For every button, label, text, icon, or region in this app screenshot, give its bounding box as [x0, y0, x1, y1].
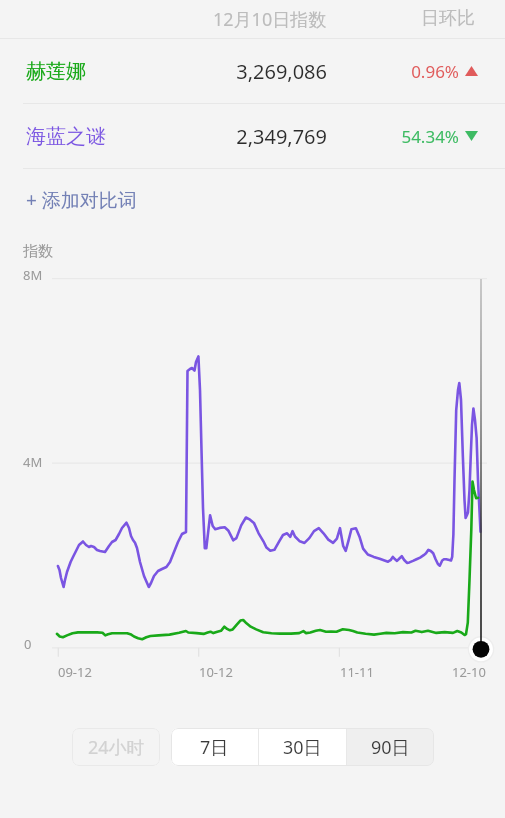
- staticText: 10-12: [199, 663, 233, 681]
- button[interactable]: 海蓝之谜: [0, 104, 505, 168]
- staticText: + 添加对比词: [26, 187, 137, 213]
- staticText: 4M: [23, 453, 43, 471]
- staticText: 赫莲娜: [26, 59, 86, 84]
- button[interactable]: 90日: [347, 728, 434, 766]
- staticText: 8M: [23, 266, 43, 284]
- staticText: 0: [24, 635, 32, 653]
- staticText: 指数: [23, 242, 53, 261]
- button[interactable]: 30日: [259, 728, 346, 766]
- staticText: 54.34%: [340, 125, 459, 148]
- staticText: 09-12: [58, 663, 92, 681]
- staticText: 90日: [371, 735, 410, 760]
- staticText: 7日: [200, 735, 229, 760]
- staticText: 12-10: [452, 663, 486, 681]
- staticText: 12月10日指数: [213, 7, 327, 32]
- staticText: 2,349,769: [147, 123, 327, 150]
- staticText: 30日: [283, 735, 322, 760]
- button[interactable]: + 添加对比词: [0, 169, 505, 231]
- staticText: 11-11: [340, 663, 374, 681]
- button[interactable]: 24小时: [72, 728, 160, 766]
- button[interactable]: 赫莲娜: [0, 39, 505, 103]
- staticText: 24小时: [88, 735, 145, 760]
- staticText: 0.96%: [340, 60, 459, 83]
- staticText: 日环比: [421, 7, 475, 30]
- staticText: 海蓝之谜: [26, 124, 106, 149]
- staticText: 3,269,086: [147, 58, 327, 85]
- button[interactable]: 指数趋势图: [0, 262, 505, 662]
- button[interactable]: 7日: [171, 728, 258, 766]
